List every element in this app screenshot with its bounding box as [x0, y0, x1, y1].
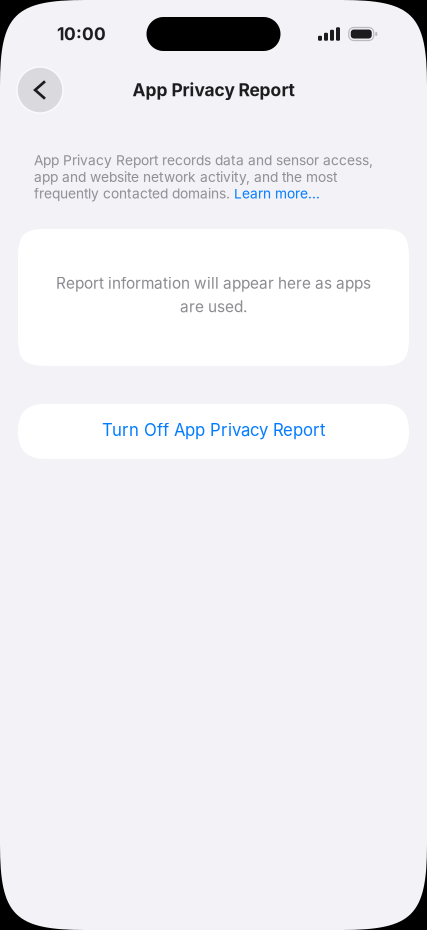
staticText: frequently contacted domains.: [34, 185, 234, 202]
staticText: 10:00: [57, 23, 106, 44]
button[interactable]: Learn more…: [234, 185, 320, 202]
staticText: App Privacy Report records data and sens…: [34, 152, 373, 169]
button[interactable]: Turn Off App Privacy Report: [18, 404, 409, 459]
staticText: are used.: [180, 297, 247, 316]
staticText: App Privacy Report: [132, 79, 294, 100]
staticText: app and website network activity, and th…: [34, 169, 337, 185]
staticText: Report information will appear here as a…: [56, 274, 371, 292]
button[interactable]: Back: [17, 67, 63, 113]
staticText: Turn Off App Privacy Report: [102, 420, 325, 440]
staticText: Learn more…: [234, 185, 320, 202]
